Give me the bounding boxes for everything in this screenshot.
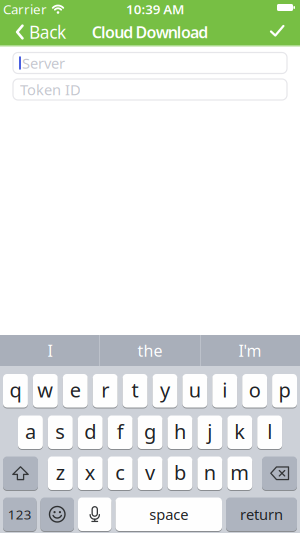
staticText: s bbox=[55, 418, 65, 445]
button[interactable]: the bbox=[101, 335, 199, 366]
staticText: j bbox=[207, 418, 212, 445]
staticText: n bbox=[204, 459, 216, 486]
staticText: I'm bbox=[238, 340, 261, 361]
staticText: q bbox=[9, 376, 21, 403]
staticText: u bbox=[189, 376, 201, 403]
staticText: Back bbox=[29, 20, 66, 43]
staticText: return bbox=[240, 504, 283, 524]
button[interactable]: q bbox=[3, 373, 28, 408]
button[interactable]: Server bbox=[13, 52, 287, 73]
button[interactable]: a bbox=[18, 415, 43, 449]
button[interactable]: u bbox=[182, 373, 207, 408]
button[interactable]: Save bbox=[262, 17, 292, 45]
staticText: I bbox=[47, 340, 52, 361]
button[interactable]: n bbox=[197, 456, 222, 490]
staticText: v bbox=[145, 459, 155, 486]
staticText: the bbox=[137, 340, 162, 361]
staticText: o bbox=[249, 376, 261, 403]
button[interactable]: f bbox=[108, 415, 133, 449]
button[interactable]: Back bbox=[9, 17, 73, 47]
button[interactable]: i bbox=[212, 373, 237, 408]
staticText: e bbox=[70, 376, 81, 403]
staticText: c bbox=[115, 459, 125, 486]
button[interactable]: d bbox=[78, 415, 103, 449]
button[interactable]: Token ID bbox=[13, 79, 287, 100]
staticText: t bbox=[131, 376, 138, 403]
button[interactable]: r bbox=[93, 373, 118, 408]
staticText: Token ID bbox=[20, 80, 81, 99]
button[interactable]: v bbox=[138, 456, 162, 490]
button[interactable]: Shift bbox=[3, 456, 38, 490]
button[interactable]: 123 bbox=[3, 497, 36, 531]
staticText: g bbox=[144, 418, 156, 445]
staticText: w bbox=[37, 376, 53, 403]
staticText: h bbox=[174, 418, 186, 445]
staticText: Cloud Download bbox=[92, 21, 208, 43]
button[interactable]: j bbox=[197, 415, 222, 449]
staticText: z bbox=[56, 459, 65, 486]
button[interactable]: space bbox=[115, 497, 222, 531]
staticText: 10:39 AM bbox=[126, 0, 184, 18]
button[interactable]: t bbox=[123, 373, 147, 408]
staticText: m bbox=[230, 459, 249, 486]
staticText: b bbox=[174, 459, 186, 486]
button[interactable]: Dictate bbox=[78, 497, 111, 531]
staticText: Server bbox=[22, 53, 65, 73]
staticText: d bbox=[84, 418, 96, 445]
staticText: space bbox=[149, 504, 188, 524]
staticText: f bbox=[117, 418, 124, 445]
button[interactable]: g bbox=[138, 415, 162, 449]
button[interactable]: b bbox=[167, 456, 192, 490]
button[interactable]: k bbox=[227, 415, 252, 449]
staticText: p bbox=[278, 376, 290, 403]
button[interactable]: m bbox=[227, 456, 252, 490]
button[interactable]: w bbox=[33, 373, 58, 408]
staticText: y bbox=[160, 376, 170, 403]
button[interactable]: p bbox=[272, 373, 297, 408]
button[interactable]: return bbox=[226, 497, 297, 531]
button[interactable]: z bbox=[48, 456, 73, 490]
button[interactable]: s bbox=[48, 415, 73, 449]
button[interactable]: c bbox=[108, 456, 133, 490]
button[interactable]: I'm bbox=[201, 335, 299, 366]
staticText: i bbox=[222, 376, 227, 403]
staticText: l bbox=[267, 418, 272, 445]
button[interactable]: I bbox=[1, 335, 99, 366]
staticText: x bbox=[85, 459, 96, 486]
staticText: Carrier bbox=[3, 0, 47, 18]
staticText: k bbox=[234, 418, 245, 445]
button[interactable]: h bbox=[167, 415, 192, 449]
button[interactable]: Delete bbox=[262, 456, 297, 490]
button[interactable]: l bbox=[257, 415, 282, 449]
button[interactable]: x bbox=[78, 456, 103, 490]
button[interactable]: y bbox=[152, 373, 177, 408]
staticText: r bbox=[101, 376, 109, 403]
staticText: 123 bbox=[8, 505, 32, 523]
button[interactable]: e bbox=[63, 373, 88, 408]
button[interactable]: Emoji bbox=[40, 497, 74, 531]
button[interactable]: o bbox=[242, 373, 267, 408]
staticText: a bbox=[25, 418, 36, 445]
